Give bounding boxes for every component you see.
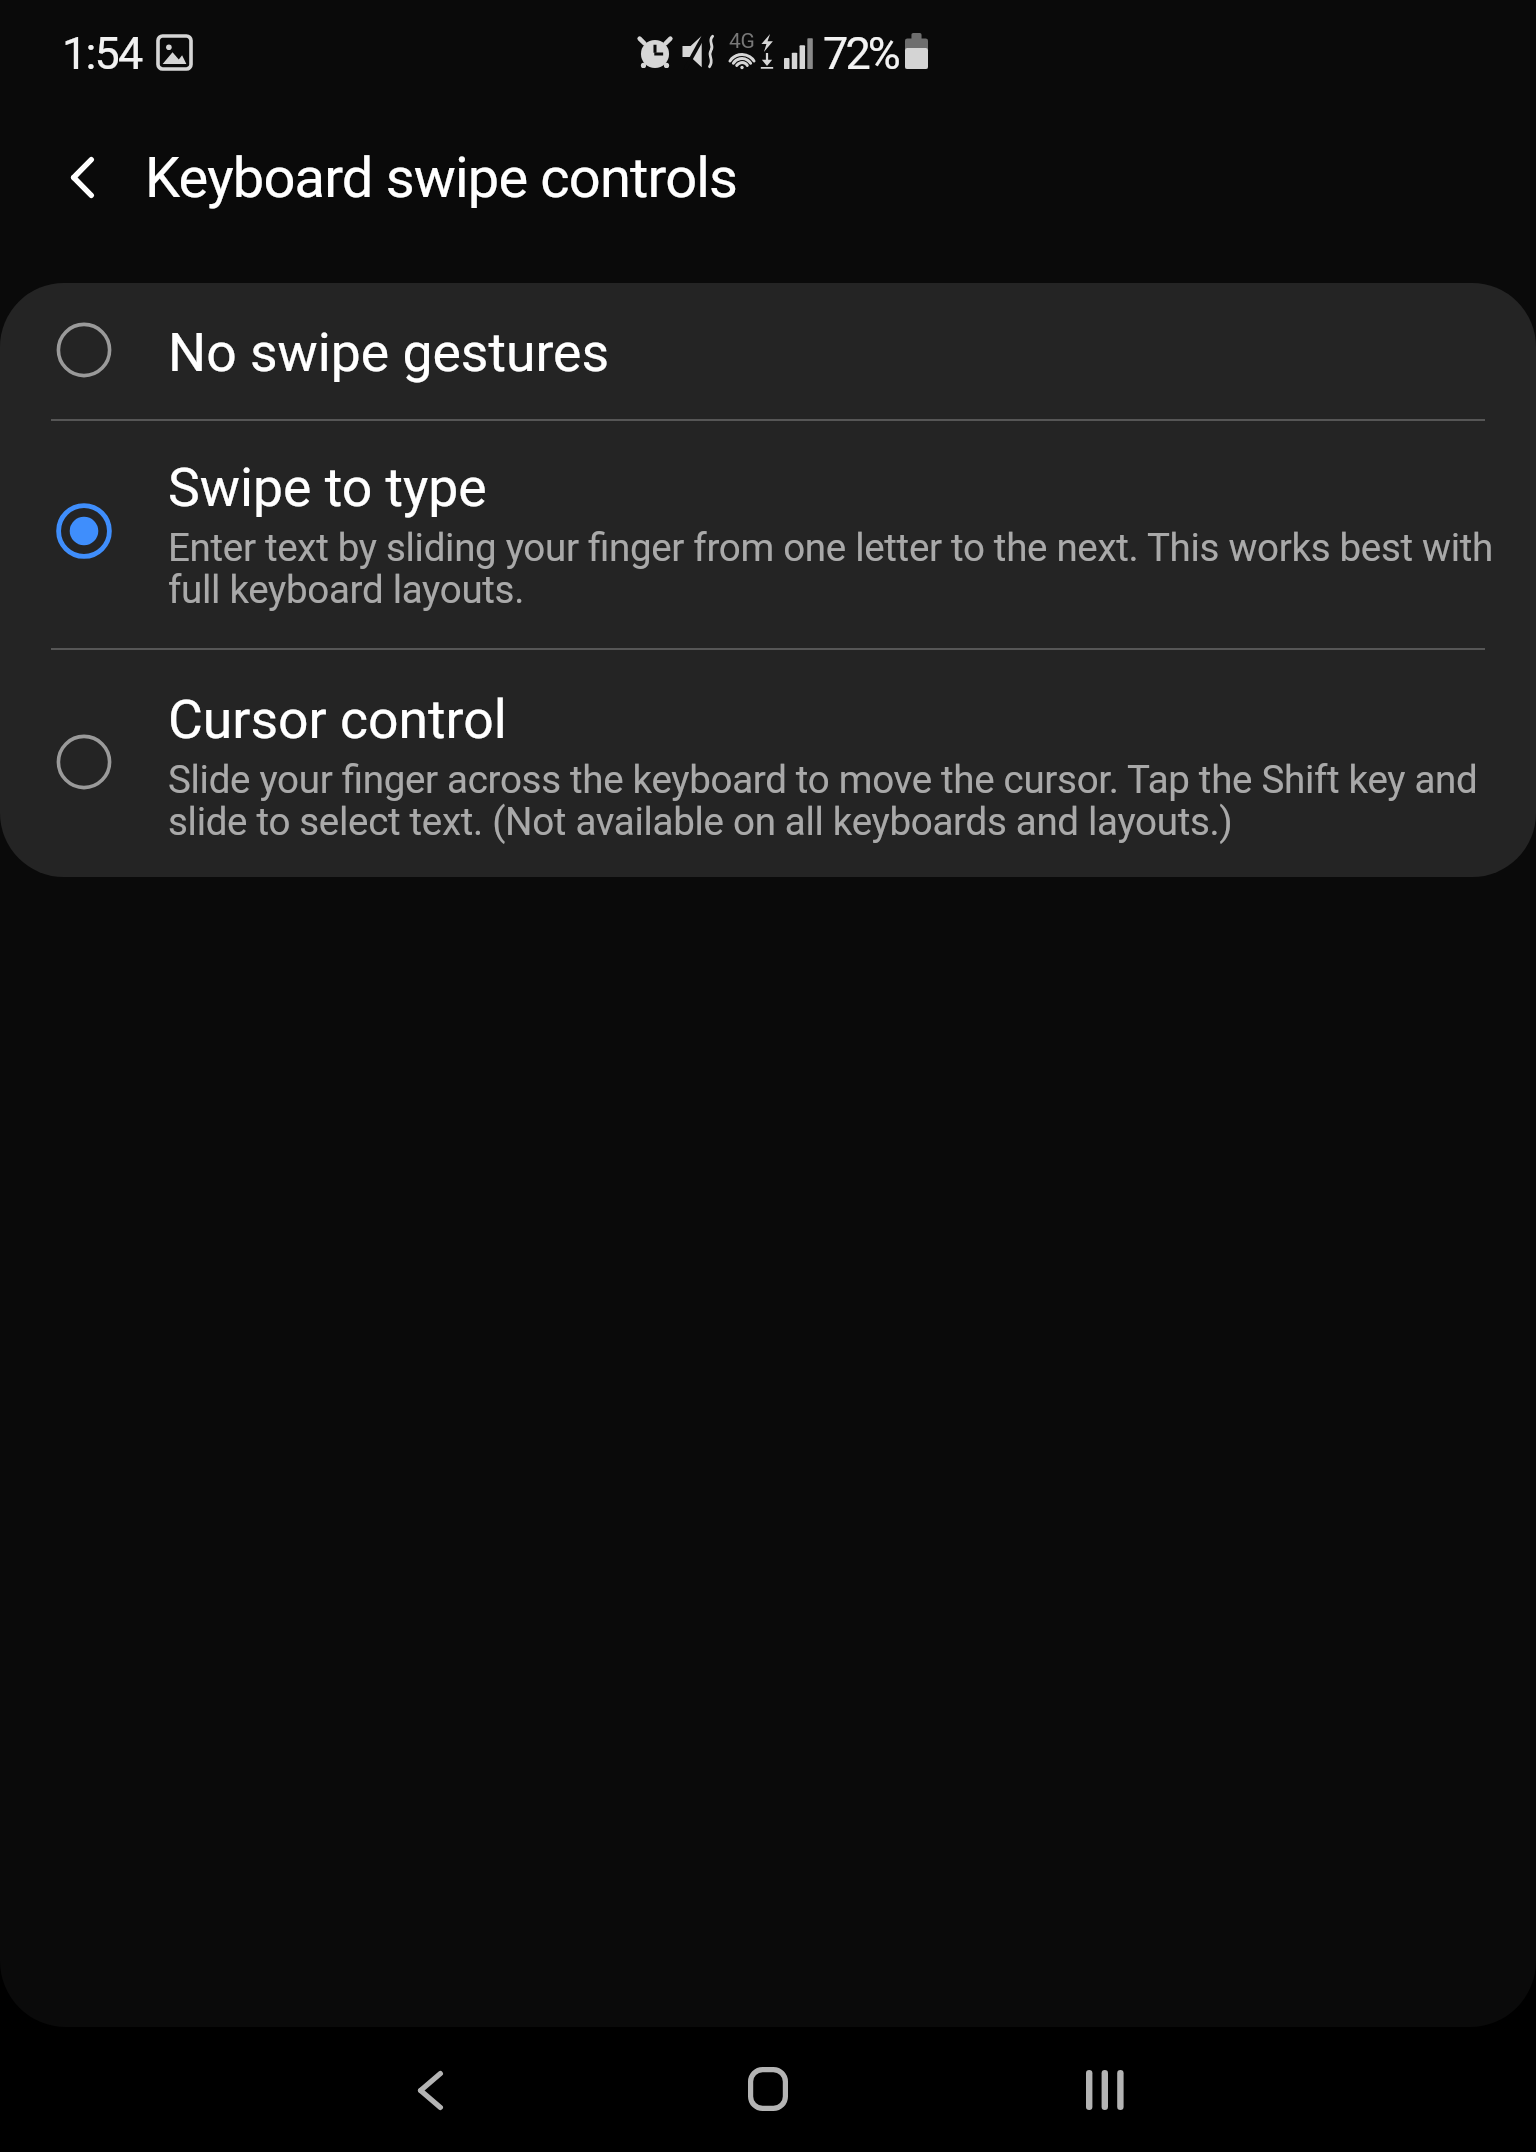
button[interactable]: Cursor control <box>0 650 1536 877</box>
staticText: Slide your finger across the keyboard to… <box>168 759 1516 843</box>
button[interactable]: Recent apps <box>1033 2027 1177 2152</box>
staticText: 4G <box>729 30 755 53</box>
button[interactable]: Navigate up <box>34 129 130 225</box>
staticText: Cursor control <box>168 694 507 750</box>
staticText: No swipe gestures <box>168 327 610 383</box>
staticText: Swipe to type <box>168 462 487 518</box>
staticText: Enter text by sliding your finger from o… <box>168 527 1516 611</box>
staticText: Keyboard swipe controls <box>145 145 738 211</box>
button[interactable]: Back <box>358 2027 502 2152</box>
staticText: 1:54 <box>62 29 142 79</box>
button[interactable]: Home <box>696 2027 840 2152</box>
staticText: 72% <box>823 29 898 79</box>
button[interactable]: No swipe gestures <box>0 283 1536 419</box>
button[interactable]: Swipe to type <box>0 421 1536 648</box>
